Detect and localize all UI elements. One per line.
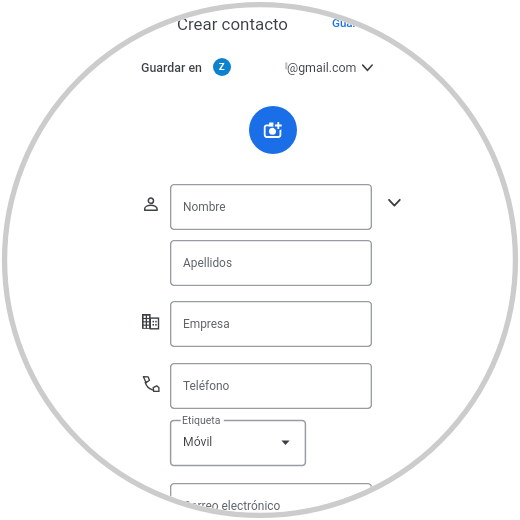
staticText: Crear contacto [177,14,288,34]
staticText: Etiqueta [182,414,221,426]
staticText: Z [219,62,225,73]
button[interactable]: Guardar en [138,56,378,80]
staticText: Apellidos [183,256,233,270]
button[interactable]: Nombre [170,184,372,230]
staticText: Guardar [332,16,374,30]
button[interactable]: Empresa [170,301,372,347]
button[interactable]: Móvil [170,420,306,466]
button[interactable]: Guardar [328,13,382,34]
staticText: Guardar en [141,60,202,75]
staticText: Teléfono [183,379,230,393]
staticText: @gmail.com [287,60,357,75]
button[interactable]: Correo electrónico [170,483,372,520]
button[interactable]: Teléfono [170,363,372,409]
button[interactable]: Expand name fields [386,196,402,210]
staticText: Nombre [183,200,226,214]
button[interactable]: Add photo [249,106,297,154]
button[interactable]: Apellidos [170,240,372,286]
staticText: Empresa [183,317,230,331]
staticText: Correo electrónico [183,499,281,513]
staticText: Móvil [183,435,213,449]
